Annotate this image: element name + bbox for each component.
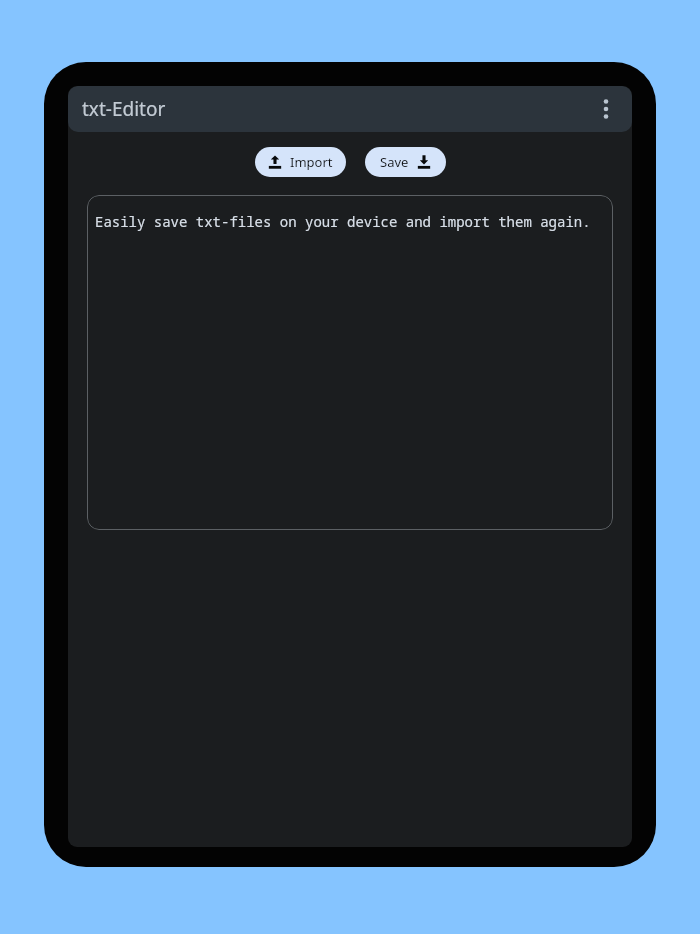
button[interactable]: Import — [255, 147, 346, 177]
staticText: Import — [290, 153, 333, 171]
staticText: Easily save txt-files on your device and… — [95, 212, 591, 231]
staticText: Save — [380, 153, 409, 171]
button[interactable]: Save — [365, 147, 446, 177]
button[interactable]: Easily save txt-files on your device and… — [87, 195, 613, 530]
staticText: txt-Editor — [82, 96, 166, 122]
button[interactable]: More options — [591, 94, 621, 124]
